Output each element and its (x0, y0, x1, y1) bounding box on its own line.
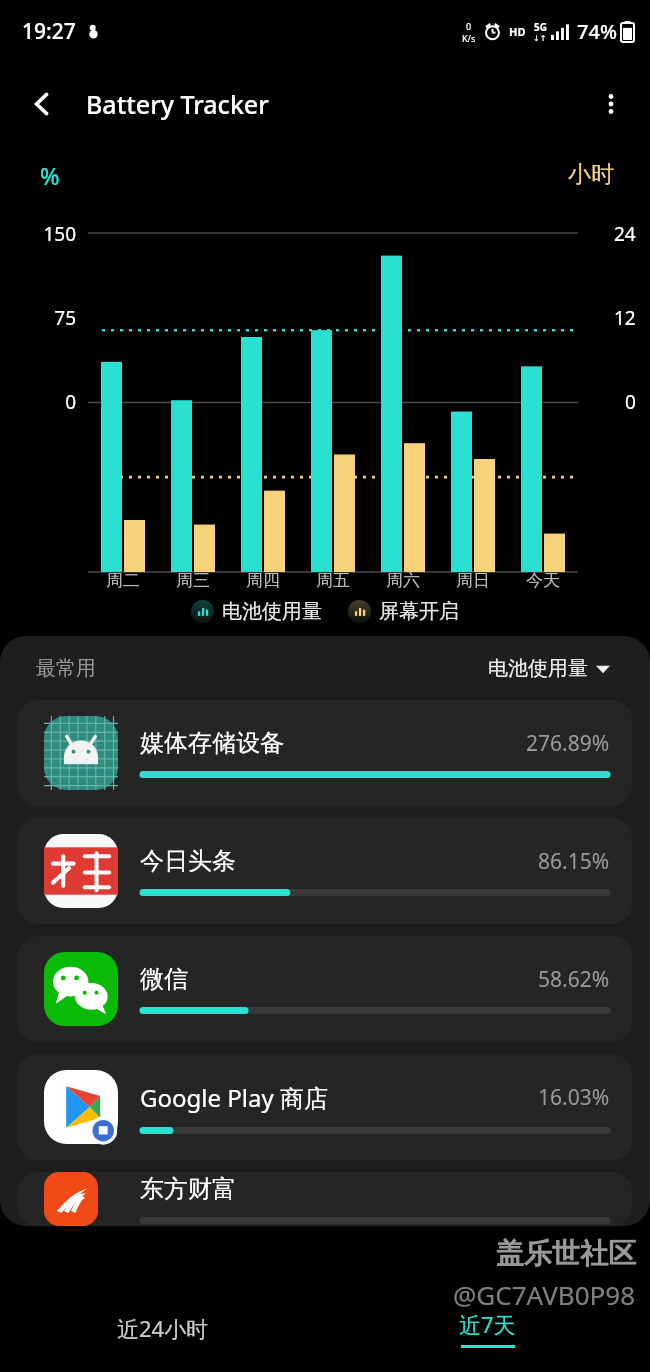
staticText: % (40, 160, 60, 191)
staticText: 58.62% (538, 965, 610, 994)
staticText: 周四 (246, 570, 280, 591)
staticText: 电池使用量 (488, 656, 588, 681)
staticText: 近7天 (459, 1309, 516, 1339)
staticText: 150 (14, 221, 76, 241)
staticText: 电池使用量 (222, 599, 322, 624)
staticText: 小时 (568, 160, 614, 189)
staticText: 0 (625, 389, 636, 409)
button[interactable]: 电池使用量 (484, 652, 614, 685)
staticText: 媒体存储设备 (140, 728, 284, 758)
staticText: Battery Tracker (86, 87, 269, 121)
staticText: 最常用 (36, 656, 96, 681)
button[interactable]: Google Play 商店 (18, 1054, 632, 1160)
button[interactable]: 近7天 (325, 1284, 650, 1372)
staticText: 屏幕开启 (379, 599, 459, 624)
staticText: 16.03% (538, 1083, 610, 1112)
button[interactable]: 电池使用量 (189, 597, 324, 626)
staticText: 276.89% (526, 729, 610, 758)
button[interactable]: More options (584, 77, 638, 131)
staticText: 86.15% (538, 847, 610, 876)
button[interactable]: 近24小时 (0, 1284, 325, 1372)
staticText: 东方财富 (140, 1174, 236, 1204)
button[interactable]: 今日头条 (18, 818, 632, 924)
staticText: 12 (614, 305, 636, 325)
staticText: 19:27 (22, 17, 76, 46)
staticText: ↓↑ (533, 34, 547, 43)
staticText: 周日 (456, 570, 490, 591)
staticText: 周二 (106, 570, 140, 591)
button[interactable]: 屏幕开启 (346, 597, 461, 626)
staticText: HD (509, 24, 526, 39)
staticText: 近24小时 (117, 1313, 209, 1343)
button[interactable]: 媒体存储设备 (18, 700, 632, 806)
staticText: K/s (462, 32, 476, 44)
staticText: 5G (534, 20, 547, 34)
staticText: 周五 (316, 570, 350, 591)
staticText: 0 (466, 20, 472, 32)
staticText: 盖乐世社区 (496, 1236, 636, 1271)
staticText: Google Play 商店 (140, 1081, 328, 1114)
staticText: 周六 (386, 570, 420, 591)
staticText: 75 (14, 305, 76, 325)
staticText: 74% (577, 18, 617, 45)
button[interactable]: 微信 (18, 936, 632, 1042)
button[interactable]: Back (14, 76, 70, 132)
staticText: 24 (614, 221, 636, 241)
staticText: 周三 (176, 570, 210, 591)
staticText: 今日头条 (140, 846, 236, 876)
button[interactable]: 东方财富 (18, 1172, 632, 1226)
staticText: 0 (14, 389, 76, 409)
staticText: 今天 (526, 570, 560, 591)
staticText: @GC7AVB0P98 (453, 1277, 636, 1312)
staticText: 微信 (140, 964, 188, 994)
